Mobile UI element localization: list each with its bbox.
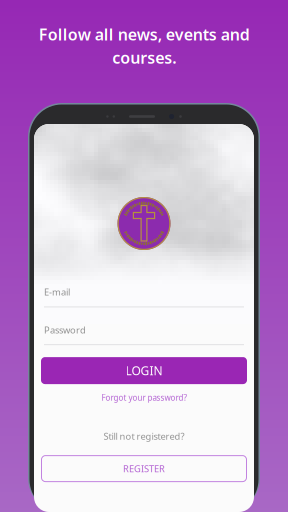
staticText: Password	[44, 324, 86, 336]
button[interactable]: LOGIN	[41, 357, 247, 384]
staticText: REGISTER	[123, 462, 165, 475]
staticText: LOGIN	[125, 363, 162, 378]
staticText: Still not registered?	[103, 430, 184, 442]
staticText: E-mail	[44, 286, 70, 298]
staticText: Follow all news, events and courses.	[38, 24, 249, 68]
button[interactable]: Forgot your password?	[41, 391, 247, 404]
staticText: Forgot your password?	[101, 392, 186, 403]
button[interactable]: REGISTER	[41, 455, 247, 482]
